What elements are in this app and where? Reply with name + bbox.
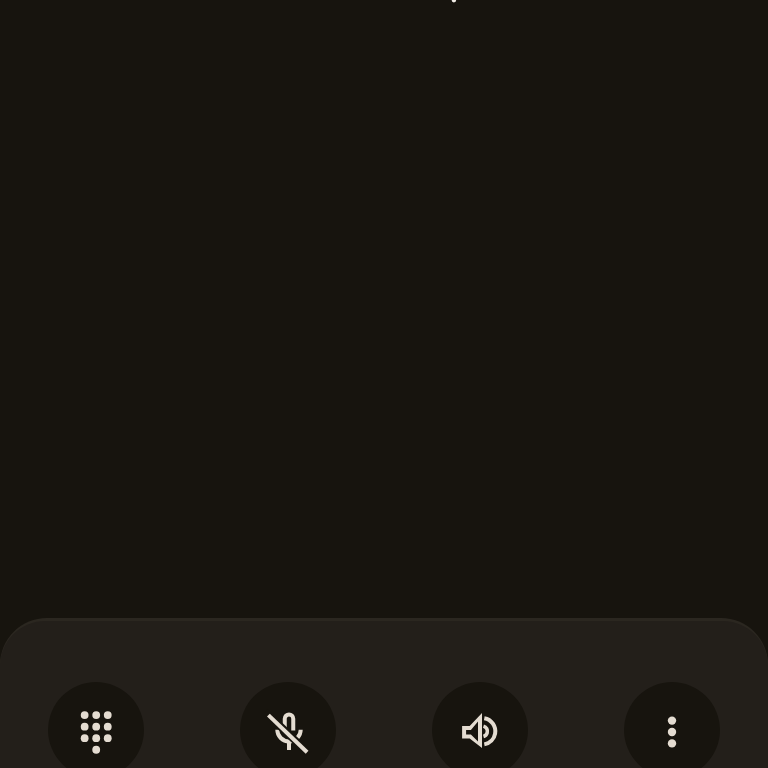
button[interactable]: Speaker [432,682,528,768]
button[interactable]: More options [624,682,720,768]
button[interactable]: Dialpad [48,682,144,768]
button[interactable]: Mute [240,682,336,768]
